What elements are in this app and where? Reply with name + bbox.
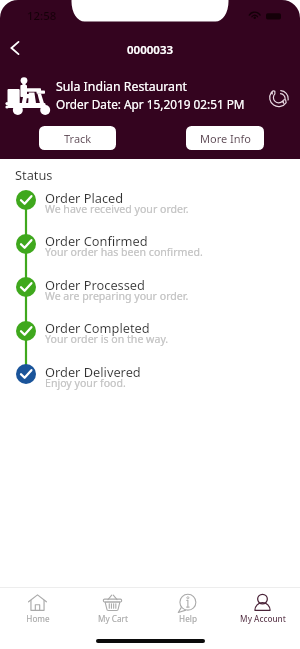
staticText: Home: [26, 613, 50, 624]
staticText: Order Processed: [45, 276, 145, 293]
staticText: Order Date: Apr 15,2019 02:51 PM: [56, 96, 245, 112]
button[interactable]: More Info: [186, 126, 264, 150]
staticText: Order Delivered: [45, 363, 141, 380]
staticText: Order Placed: [45, 189, 124, 206]
staticText: Sula Indian Restaurant: [56, 78, 187, 95]
staticText: More Info: [200, 131, 251, 146]
button[interactable]: My Cart: [75, 588, 150, 605]
staticText: Track: [64, 131, 92, 146]
button[interactable]: My Account: [225, 588, 300, 605]
staticText: Order Confirmed: [45, 232, 148, 249]
button[interactable]: Home: [0, 588, 75, 605]
staticText: Your order has been confirmed.: [45, 245, 203, 259]
staticText: Help: [179, 613, 197, 624]
staticText: My Cart: [98, 613, 128, 624]
button[interactable]: Back: [2, 35, 28, 61]
staticText: Your order is on the way.: [45, 332, 169, 346]
staticText: We are preparing your order.: [45, 289, 189, 303]
staticText: My Account: [240, 613, 286, 624]
staticText: We have received your order.: [45, 202, 189, 216]
staticText: Status: [15, 166, 53, 183]
staticText: Order Completed: [45, 319, 150, 336]
staticText: 12:58: [27, 8, 57, 24]
button[interactable]: Track: [39, 126, 116, 150]
button[interactable]: Call restaurant: [262, 80, 294, 112]
button[interactable]: Help: [150, 588, 225, 605]
staticText: Enjoy your food.: [45, 376, 126, 390]
staticText: 0000033: [127, 42, 174, 58]
